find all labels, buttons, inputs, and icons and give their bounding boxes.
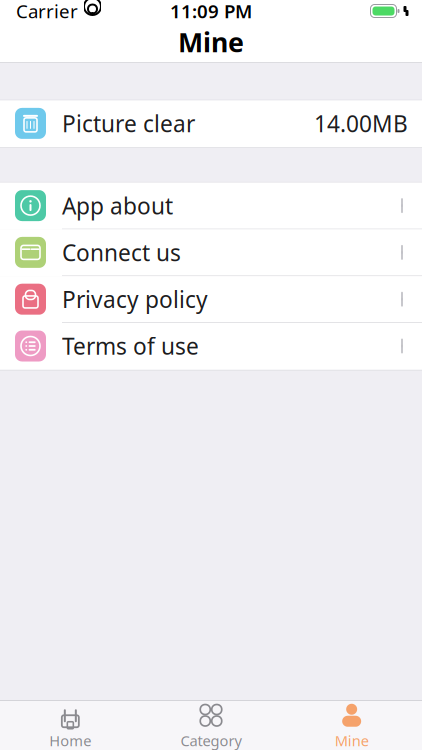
staticText: Home <box>49 731 91 750</box>
staticText: Privacy policy <box>62 284 208 314</box>
button[interactable]: Home <box>0 697 141 750</box>
button[interactable]: Mine <box>281 697 422 750</box>
button[interactable]: App about <box>0 183 422 229</box>
staticText: Carrier <box>16 0 78 23</box>
staticText: Mine <box>178 24 244 60</box>
staticText: Picture clear <box>62 108 195 138</box>
staticText: App about <box>62 190 173 221</box>
button[interactable]: Picture clear <box>0 100 422 147</box>
button[interactable]: Terms of use <box>0 323 422 370</box>
staticText: Connect us <box>62 237 181 267</box>
button[interactable]: Category <box>141 697 281 750</box>
staticText: 11:09 PM <box>170 0 252 23</box>
staticText: Mine <box>335 731 369 750</box>
button[interactable]: Privacy policy <box>0 276 422 323</box>
staticText: 14.00MB <box>314 108 408 138</box>
staticText: Category <box>180 731 241 750</box>
button[interactable]: Connect us <box>0 229 422 276</box>
staticText: Terms of use <box>62 331 199 361</box>
